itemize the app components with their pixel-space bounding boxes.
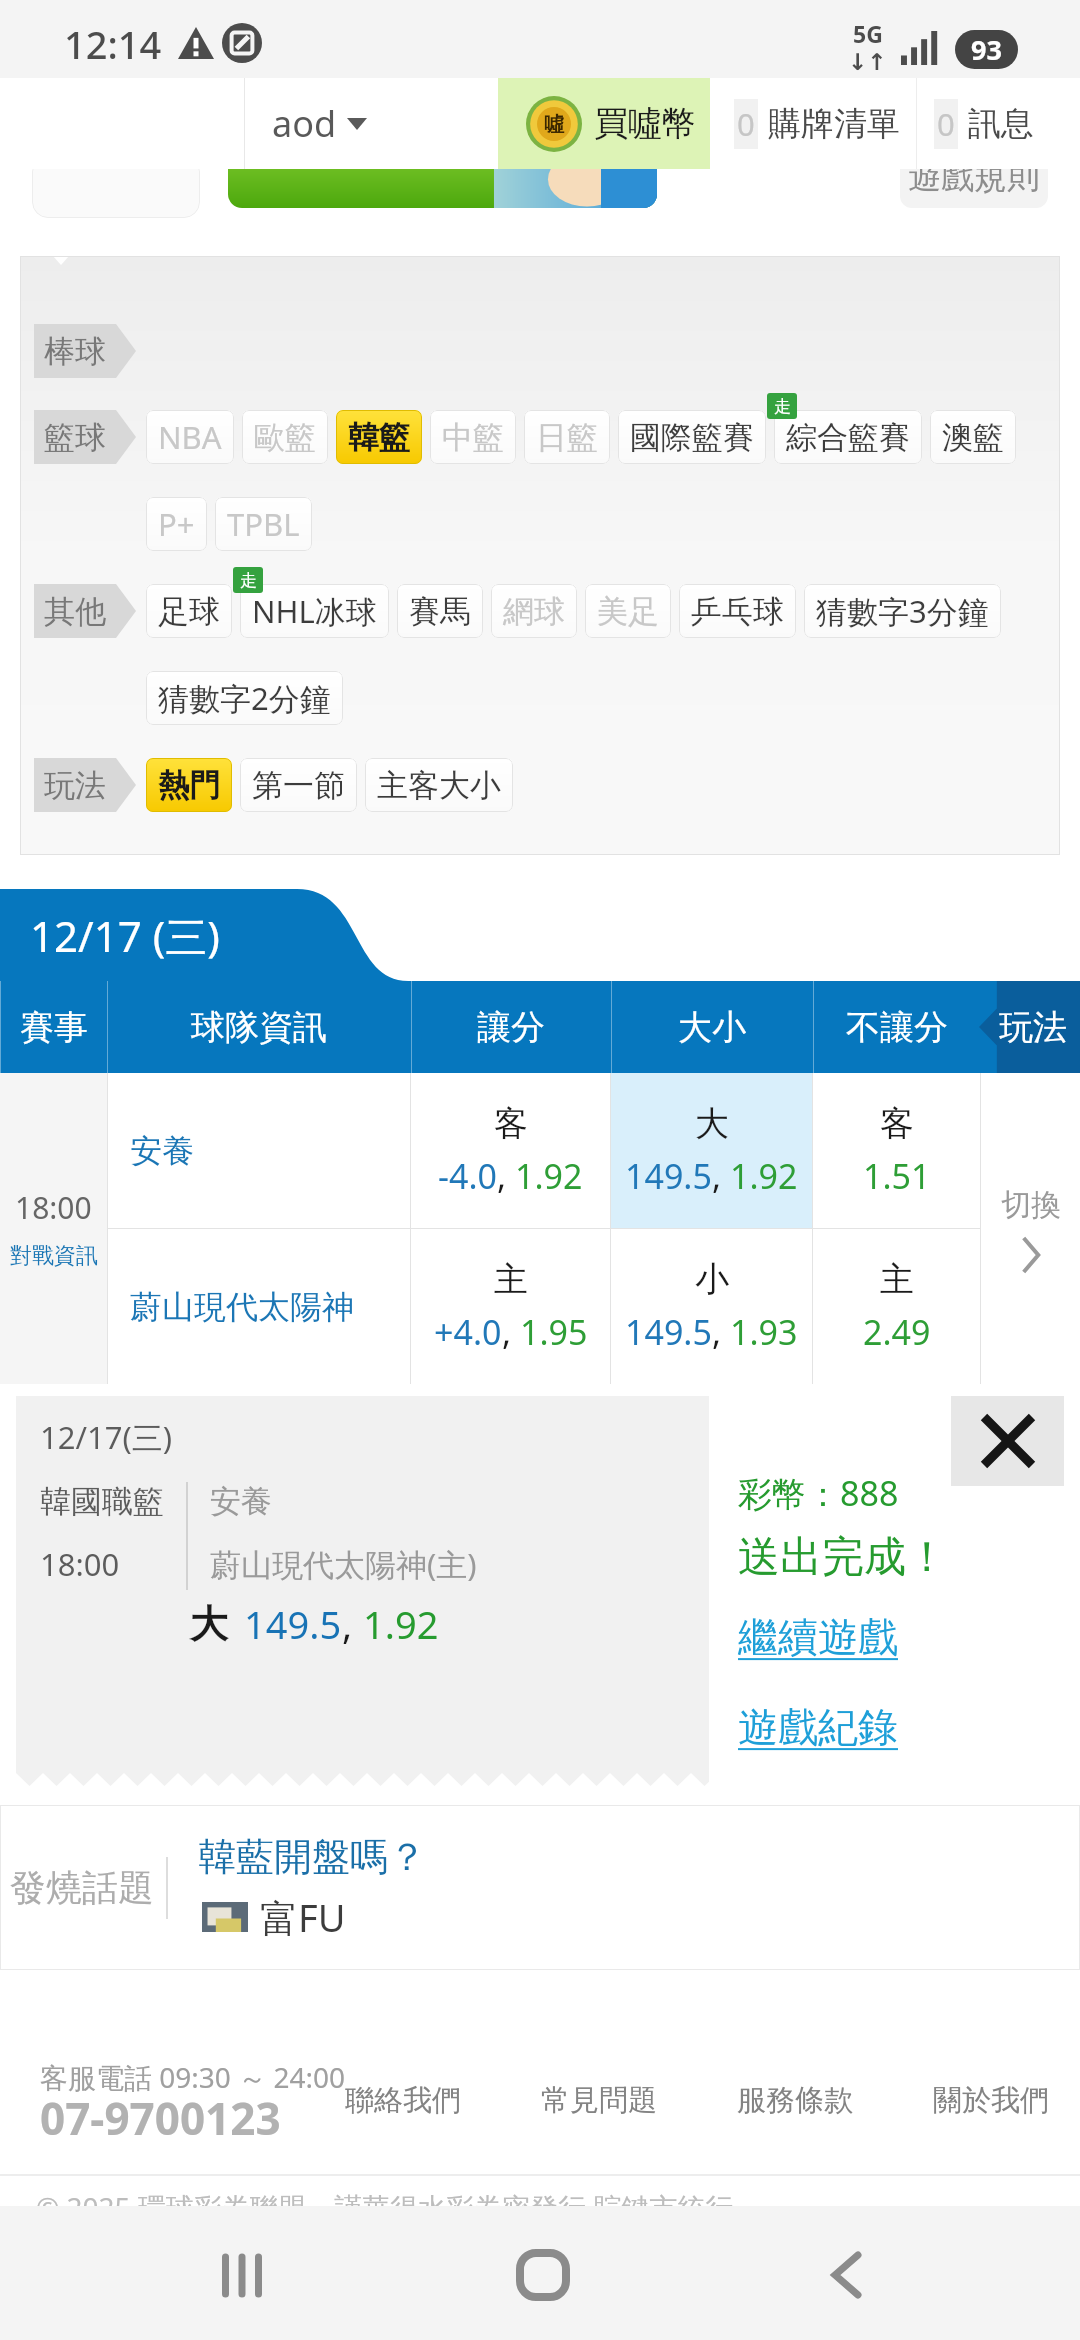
staticText: 0 — [937, 103, 955, 145]
button[interactable]: 噓 — [498, 78, 710, 169]
button[interactable]: Home — [488, 2220, 598, 2330]
button[interactable]: 主 — [411, 1229, 610, 1384]
staticText: NHL冰球 — [252, 590, 377, 632]
staticText: 蔚山現代太陽神 — [130, 1287, 354, 1327]
button[interactable]: 日籃 — [524, 410, 610, 464]
button[interactable]: NBA — [146, 410, 234, 464]
staticText: 蔚山現代太陽神(主) — [210, 1543, 477, 1585]
button[interactable]: 韓籃 — [336, 410, 422, 464]
staticText: 賽馬 — [409, 592, 471, 631]
button[interactable]: 繼續遊戲 — [738, 1612, 898, 1662]
staticText: 購牌清單 — [768, 103, 900, 145]
button[interactable]: NHL冰球 — [240, 584, 389, 638]
staticText: 0 — [737, 103, 755, 145]
staticText: 美足 — [597, 592, 659, 631]
staticText: +4.0 — [434, 1309, 502, 1355]
staticText: 客服電話 09:30 ～ 24:00 — [40, 2058, 345, 2096]
staticText: 猜數字2分鐘 — [158, 677, 331, 719]
staticText: TPBL — [227, 503, 300, 545]
button[interactable]: 遊戲紀錄 — [738, 1702, 898, 1752]
staticText: 綜合籃賽 — [786, 418, 910, 457]
button[interactable]: 第一節 — [240, 758, 357, 812]
button[interactable]: 0 — [917, 78, 1080, 169]
button[interactable]: 聯絡我們 — [345, 2082, 461, 2119]
staticText: 足球 — [158, 592, 220, 631]
staticText: 日籃 — [536, 418, 598, 457]
staticText: 關於我們 — [933, 2082, 1049, 2119]
button[interactable]: Close — [951, 1396, 1064, 1486]
staticText: 1.92 — [363, 1598, 439, 1650]
staticText: , — [342, 1598, 363, 1650]
button[interactable]: 乒乓球 — [679, 584, 796, 638]
staticText: 1.92 — [730, 1153, 798, 1199]
staticText: 棒球 — [44, 332, 106, 371]
staticText: 12:14 — [64, 18, 162, 70]
button[interactable]: 大 — [611, 1073, 812, 1228]
button[interactable]: 切換 — [981, 1073, 1080, 1384]
staticText: 走 — [240, 570, 257, 591]
button[interactable]: TPBL — [215, 497, 312, 551]
staticText: 歐籃 — [254, 418, 316, 457]
button[interactable]: 歐籃 — [242, 410, 328, 464]
staticText: 玩法 — [44, 766, 106, 805]
staticText: 富FU — [260, 1891, 346, 1943]
button[interactable]: 常見問題 — [541, 2082, 657, 2119]
button[interactable]: 中籃 — [430, 410, 516, 464]
staticText: 93 — [971, 31, 1002, 68]
staticText: , — [712, 1153, 730, 1199]
button[interactable]: P+ — [146, 497, 207, 551]
staticText: 1.93 — [730, 1309, 798, 1355]
staticText: 大 — [695, 1102, 729, 1145]
staticText: 主客大小 — [377, 766, 501, 805]
button[interactable]: aod — [244, 78, 498, 169]
staticText: NBA — [158, 416, 222, 458]
button[interactable]: 賽馬 — [397, 584, 483, 638]
button[interactable]: 服務條款 — [737, 2082, 853, 2119]
staticText: 18:00 — [15, 1187, 92, 1228]
button[interactable]: 客 — [813, 1073, 980, 1228]
button[interactable]: 關於我們 — [933, 2082, 1049, 2119]
staticText: 籃球 — [44, 418, 106, 457]
staticText: 對戰資訊 — [10, 1242, 98, 1270]
staticText: 大 — [190, 1600, 228, 1648]
staticText: 熱門 — [158, 766, 220, 805]
button[interactable]: 澳籃 — [930, 410, 1016, 464]
button[interactable]: 國際籃賽 — [618, 410, 766, 464]
button[interactable]: 猜數字3分鐘 — [804, 584, 1001, 638]
button[interactable]: 主 — [813, 1229, 980, 1384]
staticText: , — [502, 1309, 520, 1355]
staticText: 遊戲紀錄 — [738, 1702, 898, 1752]
button[interactable]: 猜數字2分鐘 — [146, 671, 343, 725]
staticText: 賽事 — [20, 1006, 88, 1049]
staticText: 猜數字3分鐘 — [816, 590, 989, 632]
button[interactable]: Back — [791, 2220, 901, 2330]
staticText: 149.5 — [244, 1598, 342, 1650]
button[interactable]: 客 — [411, 1073, 610, 1228]
staticText: 網球 — [503, 592, 565, 631]
button[interactable]: 主客大小 — [365, 758, 513, 812]
staticText: 不讓分 — [846, 1006, 948, 1049]
staticText: 149.5 — [625, 1153, 712, 1199]
button[interactable]: 韓藍開盤嗎？ — [198, 1833, 426, 1881]
staticText: 主 — [494, 1258, 528, 1301]
staticText: 玩法 — [999, 1006, 1067, 1049]
staticText: 安養 — [210, 1482, 272, 1521]
staticText: 安養 — [130, 1131, 194, 1171]
staticText: 客 — [494, 1102, 528, 1145]
staticText: 韓藍開盤嗎？ — [198, 1833, 426, 1881]
staticText: 彩幣：888 — [738, 1470, 899, 1516]
staticText: 2.49 — [863, 1309, 931, 1355]
button[interactable]: 小 — [611, 1229, 812, 1384]
button[interactable]: Recent apps — [187, 2220, 297, 2330]
staticText: 149.5 — [625, 1309, 712, 1355]
button[interactable]: 綜合籃賽 — [774, 410, 922, 464]
button[interactable]: 0 — [710, 78, 916, 169]
button[interactable]: 網球 — [491, 584, 577, 638]
staticText: 12/17 (三) — [30, 907, 220, 964]
button[interactable]: 熱門 — [146, 758, 232, 812]
button[interactable]: 遊戲規則 — [900, 146, 1048, 208]
button[interactable]: 足球 — [146, 584, 232, 638]
staticText: 1.95 — [520, 1309, 588, 1355]
button[interactable]: 美足 — [585, 584, 671, 638]
staticText: © 2025 環球彩券聯盟，謹華得水彩券密發行 賩鍵市統行 — [36, 2188, 734, 2226]
